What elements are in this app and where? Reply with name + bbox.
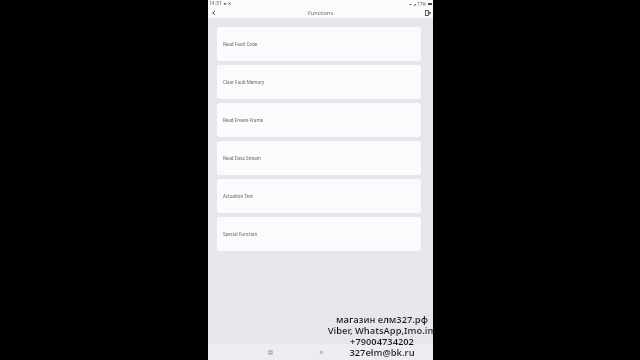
button[interactable]: Clear Fault Memory: [217, 65, 421, 99]
staticText: Clear Fault Memory: [223, 79, 265, 85]
staticText: 14:31: [209, 0, 222, 7]
staticText: магазин елм327.рф Viber, WhatsApp,Imo.im…: [317, 313, 447, 359]
button[interactable]: Back: [208, 7, 219, 18]
staticText: 77%: [417, 1, 427, 7]
button[interactable]: Special Function: [217, 217, 421, 251]
button[interactable]: Recent apps: [263, 345, 277, 359]
button[interactable]: Actuation Test: [217, 179, 421, 213]
button[interactable]: Back: [364, 345, 378, 359]
button[interactable]: Home: [314, 345, 328, 359]
staticText: Functions: [308, 9, 334, 16]
staticText: Special Function: [223, 231, 258, 237]
staticText: Read Fault Code: [223, 41, 258, 47]
staticText: Actuation Test: [223, 193, 253, 199]
button[interactable]: Read Freeze Frame: [217, 103, 421, 137]
staticText: Read Freeze Frame: [223, 117, 264, 123]
button[interactable]: Exit: [422, 7, 433, 18]
button[interactable]: Read Data Stream: [217, 141, 421, 175]
staticText: Read Data Stream: [223, 155, 262, 161]
button[interactable]: Read Fault Code: [217, 27, 421, 61]
